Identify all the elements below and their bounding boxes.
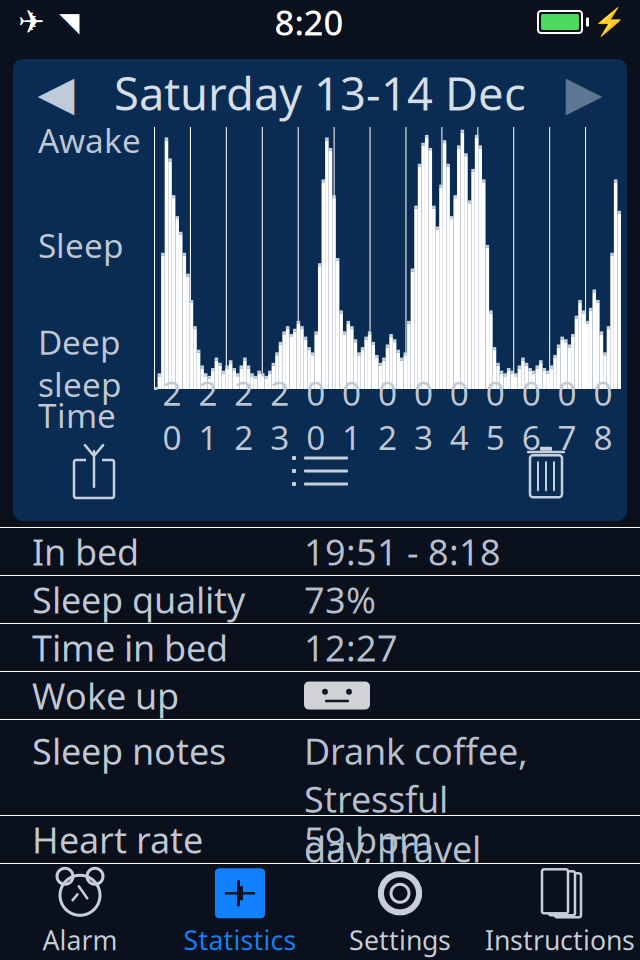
staticText: Drank coffee, Stressful (304, 727, 528, 823)
staticText: In bed (32, 528, 139, 575)
button[interactable]: Heart rate (0, 815, 640, 863)
staticText: Saturday 13-14 Dec (114, 63, 526, 123)
button[interactable]: In bed (0, 527, 640, 575)
staticText: ◀ (37, 66, 74, 120)
button[interactable]: Time in bed (0, 623, 640, 671)
staticText: 00 (306, 371, 325, 459)
staticText: 21 (198, 371, 217, 459)
button[interactable]: Statistics (160, 863, 320, 960)
button[interactable]: Alarm (0, 863, 160, 960)
staticText: Sleep quality (32, 576, 245, 623)
staticText: Sleep notes (32, 727, 226, 775)
button[interactable]: Sleep notes (0, 719, 640, 815)
button[interactable]: Delete (471, 436, 621, 506)
staticText: Settings (349, 922, 451, 958)
staticText: 22 (234, 371, 253, 459)
staticText: sleep (38, 362, 122, 406)
staticText: Awake (38, 118, 141, 162)
staticText: Woke up (32, 672, 179, 719)
button[interactable]: Sleep quality (0, 575, 640, 623)
staticText: Deep (38, 320, 121, 364)
staticText: 08 (593, 371, 612, 459)
staticText: ⚡ (593, 7, 626, 37)
staticText: day, Travel (304, 825, 481, 872)
staticText: Sleep (38, 223, 124, 267)
staticText: 03 (414, 371, 433, 459)
staticText: 20 (162, 371, 181, 459)
staticText: 8:20 (274, 0, 343, 45)
staticText: Time (38, 393, 116, 437)
staticText: ◥ (59, 7, 80, 37)
staticText: 02 (378, 371, 397, 459)
staticText: 06 (522, 371, 541, 459)
button[interactable]: Previous night (13, 62, 99, 124)
staticText: ✈ (18, 4, 45, 40)
staticText: Instructions (485, 922, 635, 958)
staticText: 73% (304, 576, 376, 623)
staticText: ▶ (565, 66, 602, 120)
staticText: 23 (270, 371, 289, 459)
staticText: 07 (558, 371, 577, 459)
button[interactable]: Sleep notes list (245, 436, 395, 506)
staticText: 05 (486, 371, 505, 459)
staticText: Time in bed (32, 624, 228, 671)
button[interactable]: Settings (320, 863, 480, 960)
staticText: 12:27 (304, 624, 398, 671)
staticText: 59 bpm (304, 816, 433, 863)
staticText: Statistics (183, 922, 296, 958)
button[interactable]: Share (19, 436, 169, 506)
staticText: Heart rate (32, 816, 203, 863)
button[interactable]: Next night (541, 62, 627, 124)
staticText: Alarm (42, 922, 117, 958)
staticText: 01 (342, 371, 361, 459)
button[interactable]: Woke up (0, 671, 640, 719)
staticText: 19:51 - 8:18 (304, 528, 501, 575)
staticText: 04 (450, 371, 469, 459)
button[interactable]: Instructions (480, 863, 640, 960)
